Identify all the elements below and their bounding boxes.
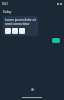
staticText: Today — [3, 10, 12, 14]
button[interactable]: Lorem ipsum dolor sit — [3, 16, 38, 36]
staticText: amet consectetur — [5, 22, 30, 26]
button[interactable]: Microphone — [31, 88, 34, 91]
staticText: 9:41 — [2, 2, 8, 6]
button[interactable] — [52, 38, 60, 43]
staticText: Lorem ipsum dolor sit — [5, 18, 36, 22]
